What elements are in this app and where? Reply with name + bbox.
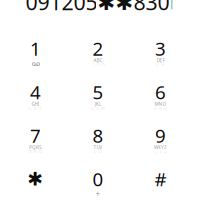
staticText: ㅅㅎㅆ (153, 106, 168, 111)
staticText: + (95, 189, 100, 199)
staticText: 8 (92, 123, 103, 148)
button[interactable]: 6 (129, 74, 191, 117)
staticText: # (154, 166, 166, 192)
staticText: ㅂㅍㅃ (90, 106, 105, 111)
button[interactable]: ✱ (4, 161, 66, 200)
staticText: MNO (154, 101, 166, 107)
button[interactable]: 1 (4, 30, 66, 73)
staticText: 2 (92, 36, 103, 61)
staticText: ABC (93, 57, 102, 64)
staticText: ✱ (27, 168, 43, 190)
staticText: ㅡㅣㅢ (153, 149, 168, 155)
staticText: 3 (155, 36, 166, 61)
staticText: ㄱㅋㄲ (90, 62, 105, 68)
button[interactable]: 3 (129, 30, 191, 73)
staticText: 6 (155, 79, 166, 105)
staticText: 0 (92, 166, 103, 192)
button[interactable]: 8 (67, 117, 129, 160)
staticText: PQRS (29, 144, 42, 151)
button[interactable]: 9 (129, 117, 191, 160)
staticText: 4 (30, 79, 41, 105)
button[interactable]: 4 (4, 74, 66, 117)
staticText: 091205✱✱830 (25, 0, 169, 17)
button[interactable]: 0 (67, 161, 129, 200)
button[interactable]: 2 (67, 30, 129, 73)
staticText: ㅈㅊㅉ (28, 149, 43, 155)
button[interactable]: 7 (4, 117, 66, 160)
staticText: 9 (155, 123, 166, 148)
button[interactable]: 5 (67, 74, 129, 117)
button[interactable]: # (129, 161, 191, 200)
staticText: 5 (92, 79, 103, 105)
staticText: GHI (31, 101, 39, 107)
staticText: ㄴㄹ (155, 62, 165, 68)
staticText: WXYZ (154, 144, 167, 151)
staticText: DEF (156, 57, 164, 64)
staticText: TUV (93, 144, 102, 151)
staticText: JKL (95, 101, 101, 107)
staticText: 1 (30, 36, 41, 61)
staticText: ㄷㅌㄸ (28, 106, 43, 111)
staticText: 7 (30, 123, 41, 148)
staticText: ㅇㅁ (93, 149, 103, 155)
